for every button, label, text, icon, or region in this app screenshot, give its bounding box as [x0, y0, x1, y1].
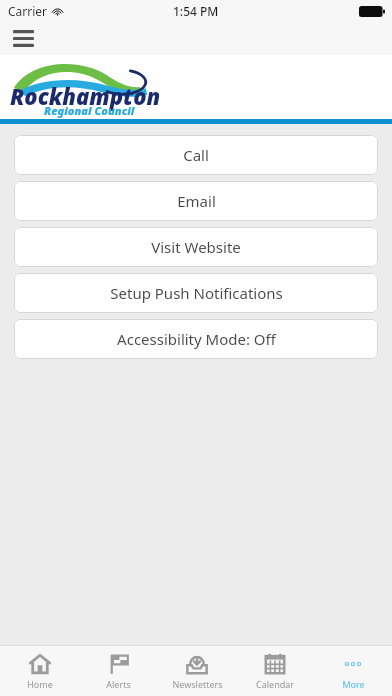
button[interactable]: Accessibility Mode: Off	[14, 319, 378, 359]
staticText: Carrier	[8, 3, 48, 19]
button[interactable]: Home	[0, 646, 79, 696]
staticText: Visit Website	[151, 237, 241, 257]
staticText: Email	[177, 191, 216, 211]
button[interactable]: Visit Website	[14, 227, 378, 267]
button[interactable]: More	[314, 646, 392, 696]
button[interactable]: Alerts	[79, 646, 158, 696]
button[interactable]: Calendar	[236, 646, 314, 696]
staticText: Home	[27, 678, 53, 690]
button[interactable]: Open navigation menu	[6, 22, 40, 55]
staticText: Regional Council	[44, 103, 135, 118]
staticText: Newsletters	[172, 678, 223, 690]
button[interactable]: Setup Push Notifications	[14, 273, 378, 313]
button[interactable]: Email	[14, 181, 378, 221]
staticText: Call	[183, 145, 209, 165]
staticText: Setup Push Notifications	[110, 283, 283, 303]
button[interactable]: Newsletters	[158, 646, 236, 696]
staticText: Calendar	[256, 678, 294, 690]
staticText: 1:54 PM	[173, 3, 219, 19]
button[interactable]: Call	[14, 135, 378, 175]
staticText: Accessibility Mode: Off	[117, 329, 276, 349]
staticText: More	[342, 678, 365, 690]
staticText: Rockhampton	[10, 81, 161, 111]
staticText: Alerts	[106, 678, 131, 690]
